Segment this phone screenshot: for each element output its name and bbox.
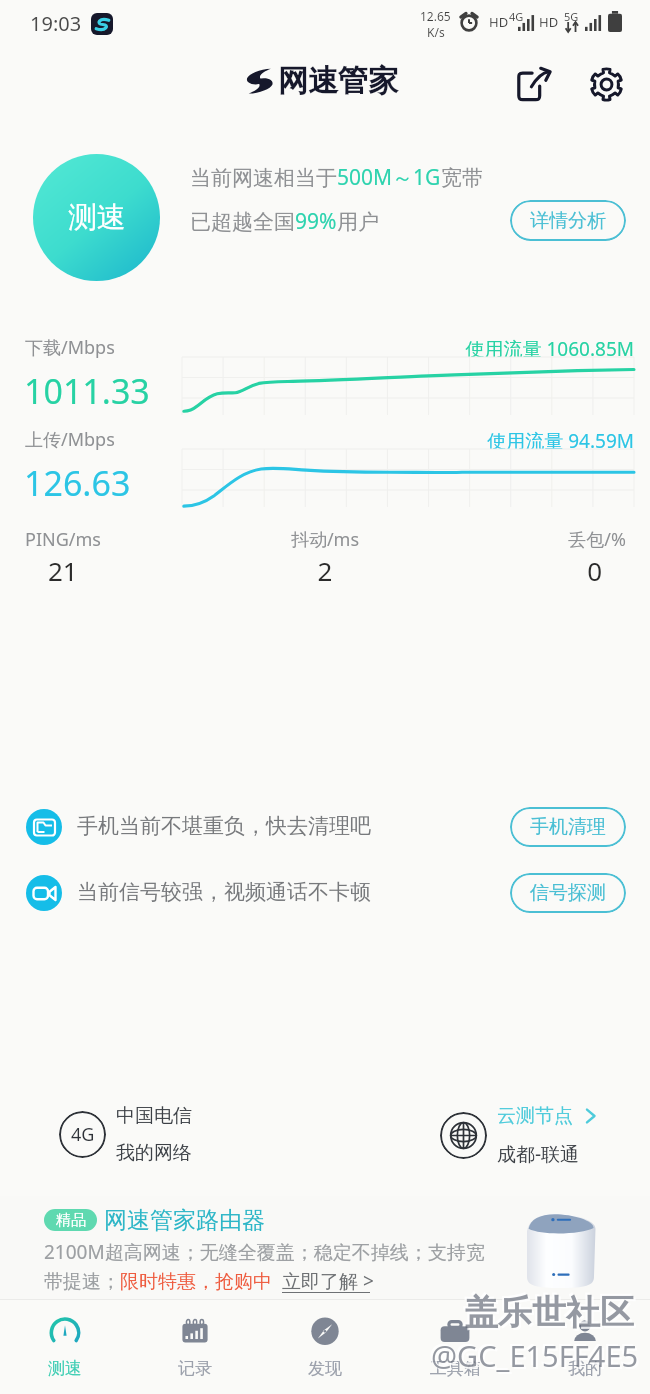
button[interactable]: 云测节点 bbox=[440, 1104, 599, 1167]
button[interactable]: 手机清理 bbox=[510, 807, 626, 847]
staticText: K/s bbox=[427, 24, 445, 40]
staticText: 2 bbox=[225, 553, 425, 588]
staticText: 限时特惠，抢购中 bbox=[120, 1270, 272, 1294]
staticText: 工具箱 bbox=[430, 1358, 481, 1379]
staticText: 立即了解 > bbox=[282, 1268, 374, 1294]
staticText: 记录 bbox=[178, 1358, 212, 1379]
staticText: 4G bbox=[509, 9, 524, 24]
button[interactable]: 工具箱 bbox=[390, 1300, 520, 1394]
button[interactable]: 详情分析 bbox=[510, 200, 626, 241]
staticText: 下载/Mbps bbox=[25, 335, 115, 360]
button[interactable]: 精品 bbox=[0, 1196, 650, 1299]
button[interactable]: 发现 bbox=[260, 1300, 390, 1394]
staticText: 126.63 bbox=[24, 460, 131, 506]
staticText: 宽带 bbox=[441, 165, 483, 191]
staticText: 已超越全国 bbox=[190, 209, 295, 235]
staticText: HD bbox=[539, 13, 559, 31]
staticText: @GC_E15FF4E5 bbox=[431, 1336, 639, 1375]
staticText: 我的网络 bbox=[116, 1141, 192, 1165]
staticText: 21 bbox=[48, 553, 78, 588]
staticText: 使用流量 1060.85M bbox=[380, 336, 634, 362]
button[interactable]: 我的 bbox=[520, 1300, 650, 1394]
staticText: 我的 bbox=[568, 1358, 602, 1379]
staticText: 精品 bbox=[56, 1211, 86, 1230]
staticText: 99% bbox=[295, 207, 337, 236]
staticText: 成都-联通 bbox=[497, 1141, 580, 1167]
staticText: 使用流量 94.59M bbox=[380, 428, 634, 454]
staticText: PING/ms bbox=[25, 527, 101, 552]
staticText: 当前网速相当于 bbox=[190, 165, 337, 191]
staticText: 发现 bbox=[308, 1358, 342, 1379]
button[interactable]: Share bbox=[512, 61, 558, 107]
staticText: 19:03 bbox=[30, 10, 82, 37]
staticText: 4G bbox=[71, 1122, 95, 1147]
staticText: 盖乐世社区 bbox=[464, 1291, 634, 1334]
button[interactable]: 信号探测 bbox=[510, 873, 626, 913]
staticText: 5G bbox=[564, 9, 579, 24]
staticText: 丢包/% bbox=[426, 527, 626, 552]
staticText: 中国电信 bbox=[116, 1104, 192, 1128]
staticText: 手机当前不堪重负，快去清理吧 bbox=[77, 813, 371, 839]
staticText: HD bbox=[489, 13, 509, 31]
staticText: 手机清理 bbox=[530, 815, 606, 839]
staticText: 2100M超高网速；无缝全覆盖；稳定不掉线；支持宽 bbox=[44, 1239, 485, 1265]
staticText: @GC_E15FF4E5 bbox=[433, 1338, 641, 1377]
staticText: 盖乐世社区 bbox=[462, 1289, 632, 1332]
staticText: 500M～1G bbox=[337, 163, 441, 192]
staticText: 测速 bbox=[48, 1358, 82, 1379]
staticText: 带提速； bbox=[44, 1270, 120, 1294]
staticText: 测速 bbox=[68, 199, 126, 236]
staticText: 用户 bbox=[337, 209, 379, 235]
staticText: 网速管家路由器 bbox=[104, 1206, 265, 1235]
staticText: 12.65 bbox=[420, 8, 451, 24]
staticText: 云测节点 bbox=[497, 1104, 573, 1128]
staticText: 抖动/ms bbox=[225, 527, 425, 552]
button[interactable]: 4G bbox=[59, 1104, 192, 1165]
button[interactable]: 记录 bbox=[130, 1300, 260, 1394]
staticText: 1011.33 bbox=[24, 368, 150, 414]
button[interactable]: 测速 bbox=[33, 154, 160, 281]
staticText: 0 bbox=[426, 553, 602, 588]
staticText: @GC_E15FF4E5 bbox=[429, 1334, 637, 1373]
staticText: 详情分析 bbox=[530, 209, 606, 233]
staticText: 信号探测 bbox=[530, 881, 606, 905]
staticText: 上传/Mbps bbox=[25, 427, 115, 452]
staticText: 网速管家 bbox=[278, 62, 398, 100]
staticText: 盖乐世社区 bbox=[466, 1293, 636, 1336]
button[interactable]: 测速 bbox=[0, 1300, 130, 1394]
button[interactable]: Settings bbox=[583, 61, 629, 107]
staticText: 当前信号较强，视频通话不卡顿 bbox=[77, 879, 371, 905]
